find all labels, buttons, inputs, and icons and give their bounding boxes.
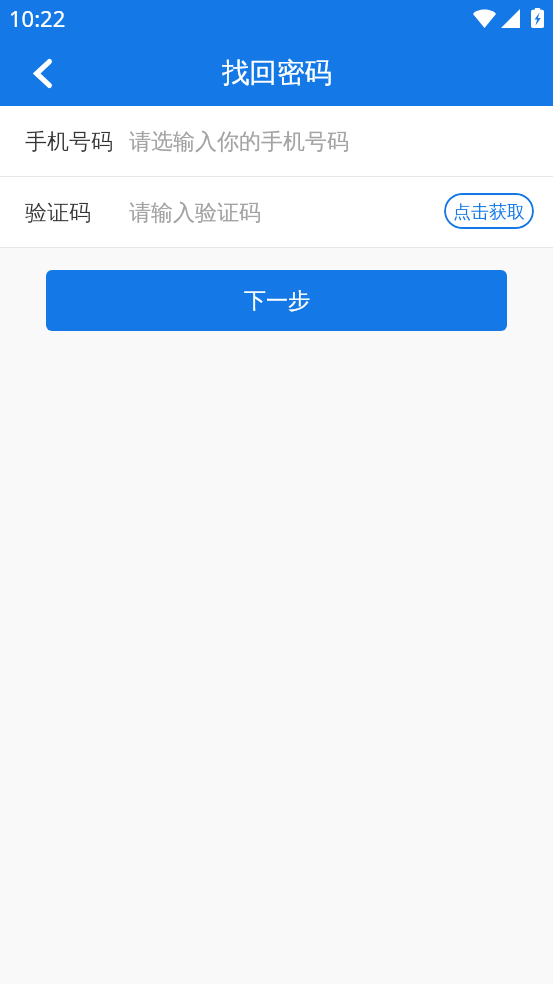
- staticText: 10:22: [9, 3, 66, 33]
- button[interactable]: 验证码: [0, 177, 444, 247]
- staticText: 请输入验证码: [129, 199, 261, 227]
- staticText: 请选输入你的手机号码: [129, 128, 349, 156]
- staticText: 下一步: [244, 287, 310, 315]
- button[interactable]: 下一步: [46, 270, 507, 331]
- button[interactable]: 点击获取: [444, 193, 534, 229]
- staticText: 点击获取: [453, 201, 525, 224]
- staticText: 验证码: [25, 199, 91, 227]
- button[interactable]: Back: [0, 40, 86, 106]
- staticText: 找回密码: [222, 56, 332, 91]
- staticText: 手机号码: [25, 128, 113, 156]
- button[interactable]: 手机号码: [0, 106, 553, 176]
